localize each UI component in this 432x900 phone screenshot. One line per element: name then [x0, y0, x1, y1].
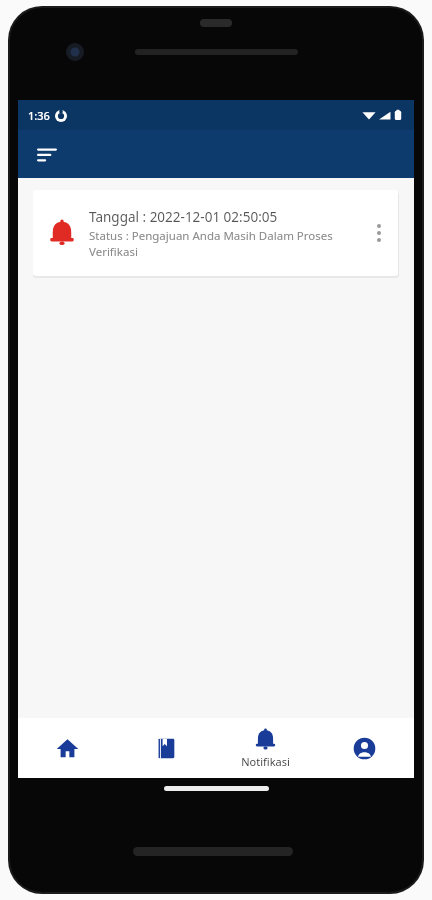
staticText: Tanggal : 2022-12-01 02:50:05: [89, 208, 278, 226]
staticText: Status : Pengajuan Anda Masih Dalam Pros…: [89, 228, 366, 259]
staticText: Notifikasi: [241, 754, 290, 769]
staticText: 1:36: [28, 108, 50, 123]
button[interactable]: Profile: [315, 718, 414, 778]
button[interactable]: Notifikasi: [216, 718, 315, 778]
button[interactable]: Documents: [117, 718, 216, 778]
button[interactable]: Menu: [30, 137, 64, 171]
button[interactable]: Home: [18, 718, 117, 778]
button[interactable]: More options: [366, 210, 392, 256]
button[interactable]: Tanggal : 2022-12-01 02:50:05: [33, 190, 398, 276]
